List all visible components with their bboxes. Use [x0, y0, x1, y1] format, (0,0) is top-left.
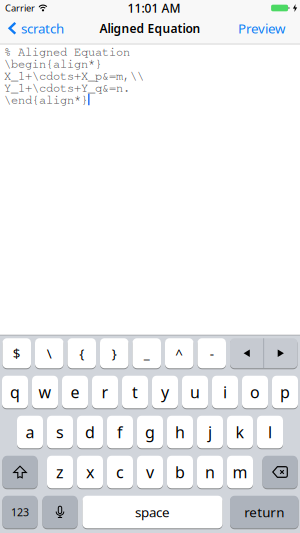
- staticText: t: [132, 381, 138, 403]
- staticText: 123: [11, 505, 29, 519]
- staticText: % Aligned Equation: [4, 44, 130, 59]
- button[interactable]: x: [77, 455, 103, 489]
- button[interactable]: Move cursor left: [230, 338, 263, 368]
- button[interactable]: \: [35, 338, 63, 369]
- staticText: j: [208, 421, 212, 443]
- button[interactable]: Back to scratch: [8, 19, 64, 37]
- button[interactable]: f: [107, 415, 133, 449]
- staticText: 11:01 AM: [127, 0, 180, 16]
- button[interactable]: s: [47, 415, 73, 449]
- button[interactable]: c: [107, 455, 133, 489]
- staticText: space: [135, 503, 170, 521]
- staticText: w: [38, 381, 51, 403]
- button[interactable]: q: [2, 375, 28, 409]
- staticText: f: [117, 421, 123, 443]
- button[interactable]: o: [242, 375, 268, 409]
- button[interactable]: l: [257, 415, 283, 449]
- button[interactable]: 123: [2, 495, 37, 529]
- staticText: \: [47, 344, 52, 362]
- button[interactable]: u: [182, 375, 208, 409]
- button[interactable]: return: [230, 495, 298, 529]
- button[interactable]: k: [227, 415, 253, 449]
- button[interactable]: Move cursor right: [264, 338, 297, 368]
- staticText: s: [56, 421, 64, 443]
- button[interactable]: p: [272, 375, 298, 409]
- staticText: r: [101, 381, 108, 403]
- button[interactable]: _: [132, 338, 161, 369]
- button[interactable]: g: [137, 415, 163, 449]
- staticText: Preview: [238, 19, 285, 37]
- staticText: u: [190, 381, 200, 403]
- staticText: v: [146, 461, 154, 483]
- button[interactable]: r: [92, 375, 118, 409]
- button[interactable]: b: [167, 455, 193, 489]
- staticText: {: [79, 344, 84, 362]
- button[interactable]: e: [62, 375, 88, 409]
- staticText: p: [280, 381, 290, 403]
- button[interactable]: i: [212, 375, 238, 409]
- staticText: Y_1+\cdots+Y_q&=n.: [4, 80, 130, 95]
- staticText: o: [250, 381, 260, 403]
- button[interactable]: ^: [165, 338, 193, 369]
- staticText: return: [244, 503, 284, 521]
- button[interactable]: t: [122, 375, 148, 409]
- button[interactable]: w: [32, 375, 58, 409]
- staticText: -: [210, 344, 214, 362]
- button[interactable]: $: [2, 338, 31, 369]
- button[interactable]: {: [67, 338, 96, 369]
- staticText: X_1+\cdots+X_p&=m,\\: [4, 68, 144, 83]
- button[interactable]: h: [167, 415, 193, 449]
- staticText: l: [268, 421, 272, 443]
- button[interactable]: Dictate: [42, 495, 77, 529]
- button[interactable]: y: [152, 375, 178, 409]
- button[interactable]: a: [17, 415, 43, 449]
- staticText: Carrier: [5, 2, 35, 14]
- staticText: scratch: [21, 19, 64, 37]
- staticText: e: [70, 381, 79, 403]
- button[interactable]: z: [47, 455, 73, 489]
- staticText: $: [13, 344, 21, 362]
- staticText: i: [223, 381, 227, 403]
- staticText: b: [175, 461, 185, 483]
- button[interactable]: Shift: [2, 455, 37, 489]
- staticText: \end{align*}: [4, 92, 88, 107]
- button[interactable]: v: [137, 455, 163, 489]
- staticText: ^: [175, 344, 183, 362]
- button[interactable]: Preview: [238, 19, 285, 37]
- staticText: h: [175, 421, 185, 443]
- staticText: c: [116, 461, 124, 483]
- staticText: d: [85, 421, 95, 443]
- staticText: z: [56, 461, 64, 483]
- button[interactable]: m: [227, 455, 253, 489]
- staticText: _: [144, 344, 150, 362]
- staticText: Aligned Equation: [99, 20, 200, 36]
- button[interactable]: d: [77, 415, 103, 449]
- staticText: x: [86, 461, 94, 483]
- button[interactable]: j: [197, 415, 223, 449]
- button[interactable]: n: [197, 455, 223, 489]
- staticText: a: [25, 421, 34, 443]
- staticText: n: [205, 461, 215, 483]
- staticText: g: [145, 421, 155, 443]
- staticText: q: [10, 381, 20, 403]
- staticText: k: [235, 421, 244, 443]
- staticText: }: [112, 344, 117, 362]
- button[interactable]: }: [100, 338, 128, 369]
- staticText: m: [232, 461, 247, 483]
- button[interactable]: -: [197, 338, 226, 369]
- button[interactable]: Delete: [262, 455, 297, 489]
- button[interactable]: space: [82, 495, 222, 529]
- staticText: y: [161, 381, 169, 403]
- staticText: \begin{align*}: [4, 56, 102, 71]
